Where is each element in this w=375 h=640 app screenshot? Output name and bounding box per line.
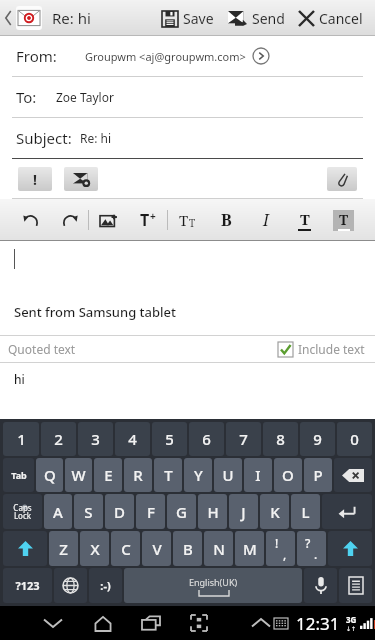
button[interactable]: Include text: [276, 341, 367, 357]
staticText: S: [84, 502, 93, 522]
button[interactable]: N: [204, 531, 233, 566]
staticText: Subject:: [16, 128, 72, 148]
staticText: Tab: [11, 469, 27, 481]
button[interactable]: Italic: [246, 199, 285, 241]
button[interactable]: L: [291, 494, 320, 529]
button[interactable]: E: [94, 458, 122, 492]
button[interactable]: 1: [3, 422, 39, 456]
staticText: T: [179, 210, 189, 230]
button[interactable]: G: [167, 494, 196, 529]
button[interactable]: Shift: [3, 531, 47, 566]
button[interactable]: T: [154, 458, 182, 492]
staticText: Z: [59, 539, 68, 559]
button[interactable]: Q: [36, 458, 63, 492]
button[interactable]: Shift: [328, 531, 372, 566]
staticText: K: [270, 502, 280, 522]
button[interactable]: C: [111, 531, 140, 566]
button[interactable]: Keyboard settings: [339, 568, 372, 603]
staticText: X: [90, 539, 100, 559]
button[interactable]: Expand recipients: [252, 47, 270, 65]
button[interactable]: 6: [189, 422, 224, 456]
button[interactable]: J: [229, 494, 258, 529]
button[interactable]: Enter: [322, 494, 372, 529]
button[interactable]: Y: [184, 458, 212, 492]
button[interactable]: Attach: [327, 167, 357, 191]
button[interactable]: 4: [115, 422, 150, 456]
staticText: T: [140, 209, 150, 231]
staticText: L: [301, 502, 310, 522]
button[interactable]: Undo: [12, 199, 50, 241]
button[interactable]: Change language: [54, 568, 87, 603]
button[interactable]: Priority: [18, 167, 52, 191]
button[interactable]: Bold: [207, 199, 246, 241]
button[interactable]: P: [304, 458, 332, 492]
button[interactable]: Save: [160, 5, 216, 32]
button[interactable]: Cancel: [297, 5, 365, 32]
button[interactable]: Z: [49, 531, 78, 566]
staticText: Save: [183, 9, 214, 28]
button[interactable]: Subject:: [0, 118, 375, 158]
staticText: A: [53, 502, 63, 522]
button[interactable]: S: [74, 494, 103, 529]
button[interactable]: From:: [0, 36, 375, 76]
button[interactable]: K: [260, 494, 289, 529]
button[interactable]: Backspace: [334, 458, 372, 492]
button[interactable]: B: [173, 531, 202, 566]
button[interactable]: I: [244, 458, 272, 492]
button[interactable]: ?123: [3, 568, 52, 603]
button[interactable]: Underline: [285, 199, 324, 241]
button[interactable]: Font size: [128, 199, 167, 241]
button[interactable]: Text colour: [324, 199, 363, 241]
button[interactable]: Screen capture: [186, 610, 212, 636]
button[interactable]: 0: [337, 422, 372, 456]
button[interactable]: O: [274, 458, 302, 492]
button[interactable]: 8: [263, 422, 298, 456]
button[interactable]: U: [214, 458, 242, 492]
staticText: W: [71, 465, 86, 485]
staticText: Quoted text: [8, 341, 76, 357]
button[interactable]: Show more: [248, 610, 274, 636]
staticText: English(UK): [189, 576, 238, 588]
button[interactable]: M: [235, 531, 264, 566]
other: Back: [4, 11, 13, 25]
button[interactable]: X: [80, 531, 109, 566]
button[interactable]: H: [198, 494, 227, 529]
button[interactable]: Caps Lock: [3, 494, 42, 529]
button[interactable]: R: [124, 458, 152, 492]
button[interactable]: 7: [226, 422, 261, 456]
staticText: From:: [16, 46, 57, 66]
button[interactable]: 9: [300, 422, 335, 456]
button[interactable]: 2: [41, 422, 76, 456]
button[interactable]: A: [44, 494, 72, 529]
staticText: Sent from Samsung tablet: [14, 303, 177, 321]
staticText: 2: [54, 429, 63, 449]
button[interactable]: 3: [78, 422, 113, 456]
button[interactable]: Tab: [3, 458, 34, 492]
button[interactable]: W: [65, 458, 92, 492]
button[interactable]: Text size: [168, 199, 207, 241]
button[interactable]: F: [136, 494, 165, 529]
button[interactable]: Space: [124, 568, 302, 603]
button[interactable]: !: [266, 531, 295, 566]
staticText: I: [263, 209, 269, 231]
button[interactable]: Insert image: [89, 199, 128, 241]
button[interactable]: Back: [0, 6, 44, 30]
staticText: .: [314, 546, 318, 562]
button[interactable]: ?: [297, 531, 326, 566]
button[interactable]: To:: [0, 77, 375, 117]
staticText: Zoe Taylor: [56, 89, 114, 105]
button[interactable]: Send: [226, 5, 287, 32]
button[interactable]: :-): [89, 568, 122, 603]
button[interactable]: Tracking options: [64, 167, 98, 191]
staticText: T: [164, 465, 173, 485]
button[interactable]: Recent apps: [138, 610, 164, 636]
button[interactable]: [0, 241, 375, 303]
button[interactable]: Hide keyboard: [40, 610, 66, 636]
button[interactable]: D: [105, 494, 134, 529]
button[interactable]: Home: [90, 610, 116, 636]
button[interactable]: 5: [152, 422, 187, 456]
staticText: Caps Lock: [13, 502, 32, 521]
button[interactable]: Voice input: [304, 568, 337, 603]
button[interactable]: V: [142, 531, 171, 566]
button[interactable]: Redo: [50, 199, 88, 241]
